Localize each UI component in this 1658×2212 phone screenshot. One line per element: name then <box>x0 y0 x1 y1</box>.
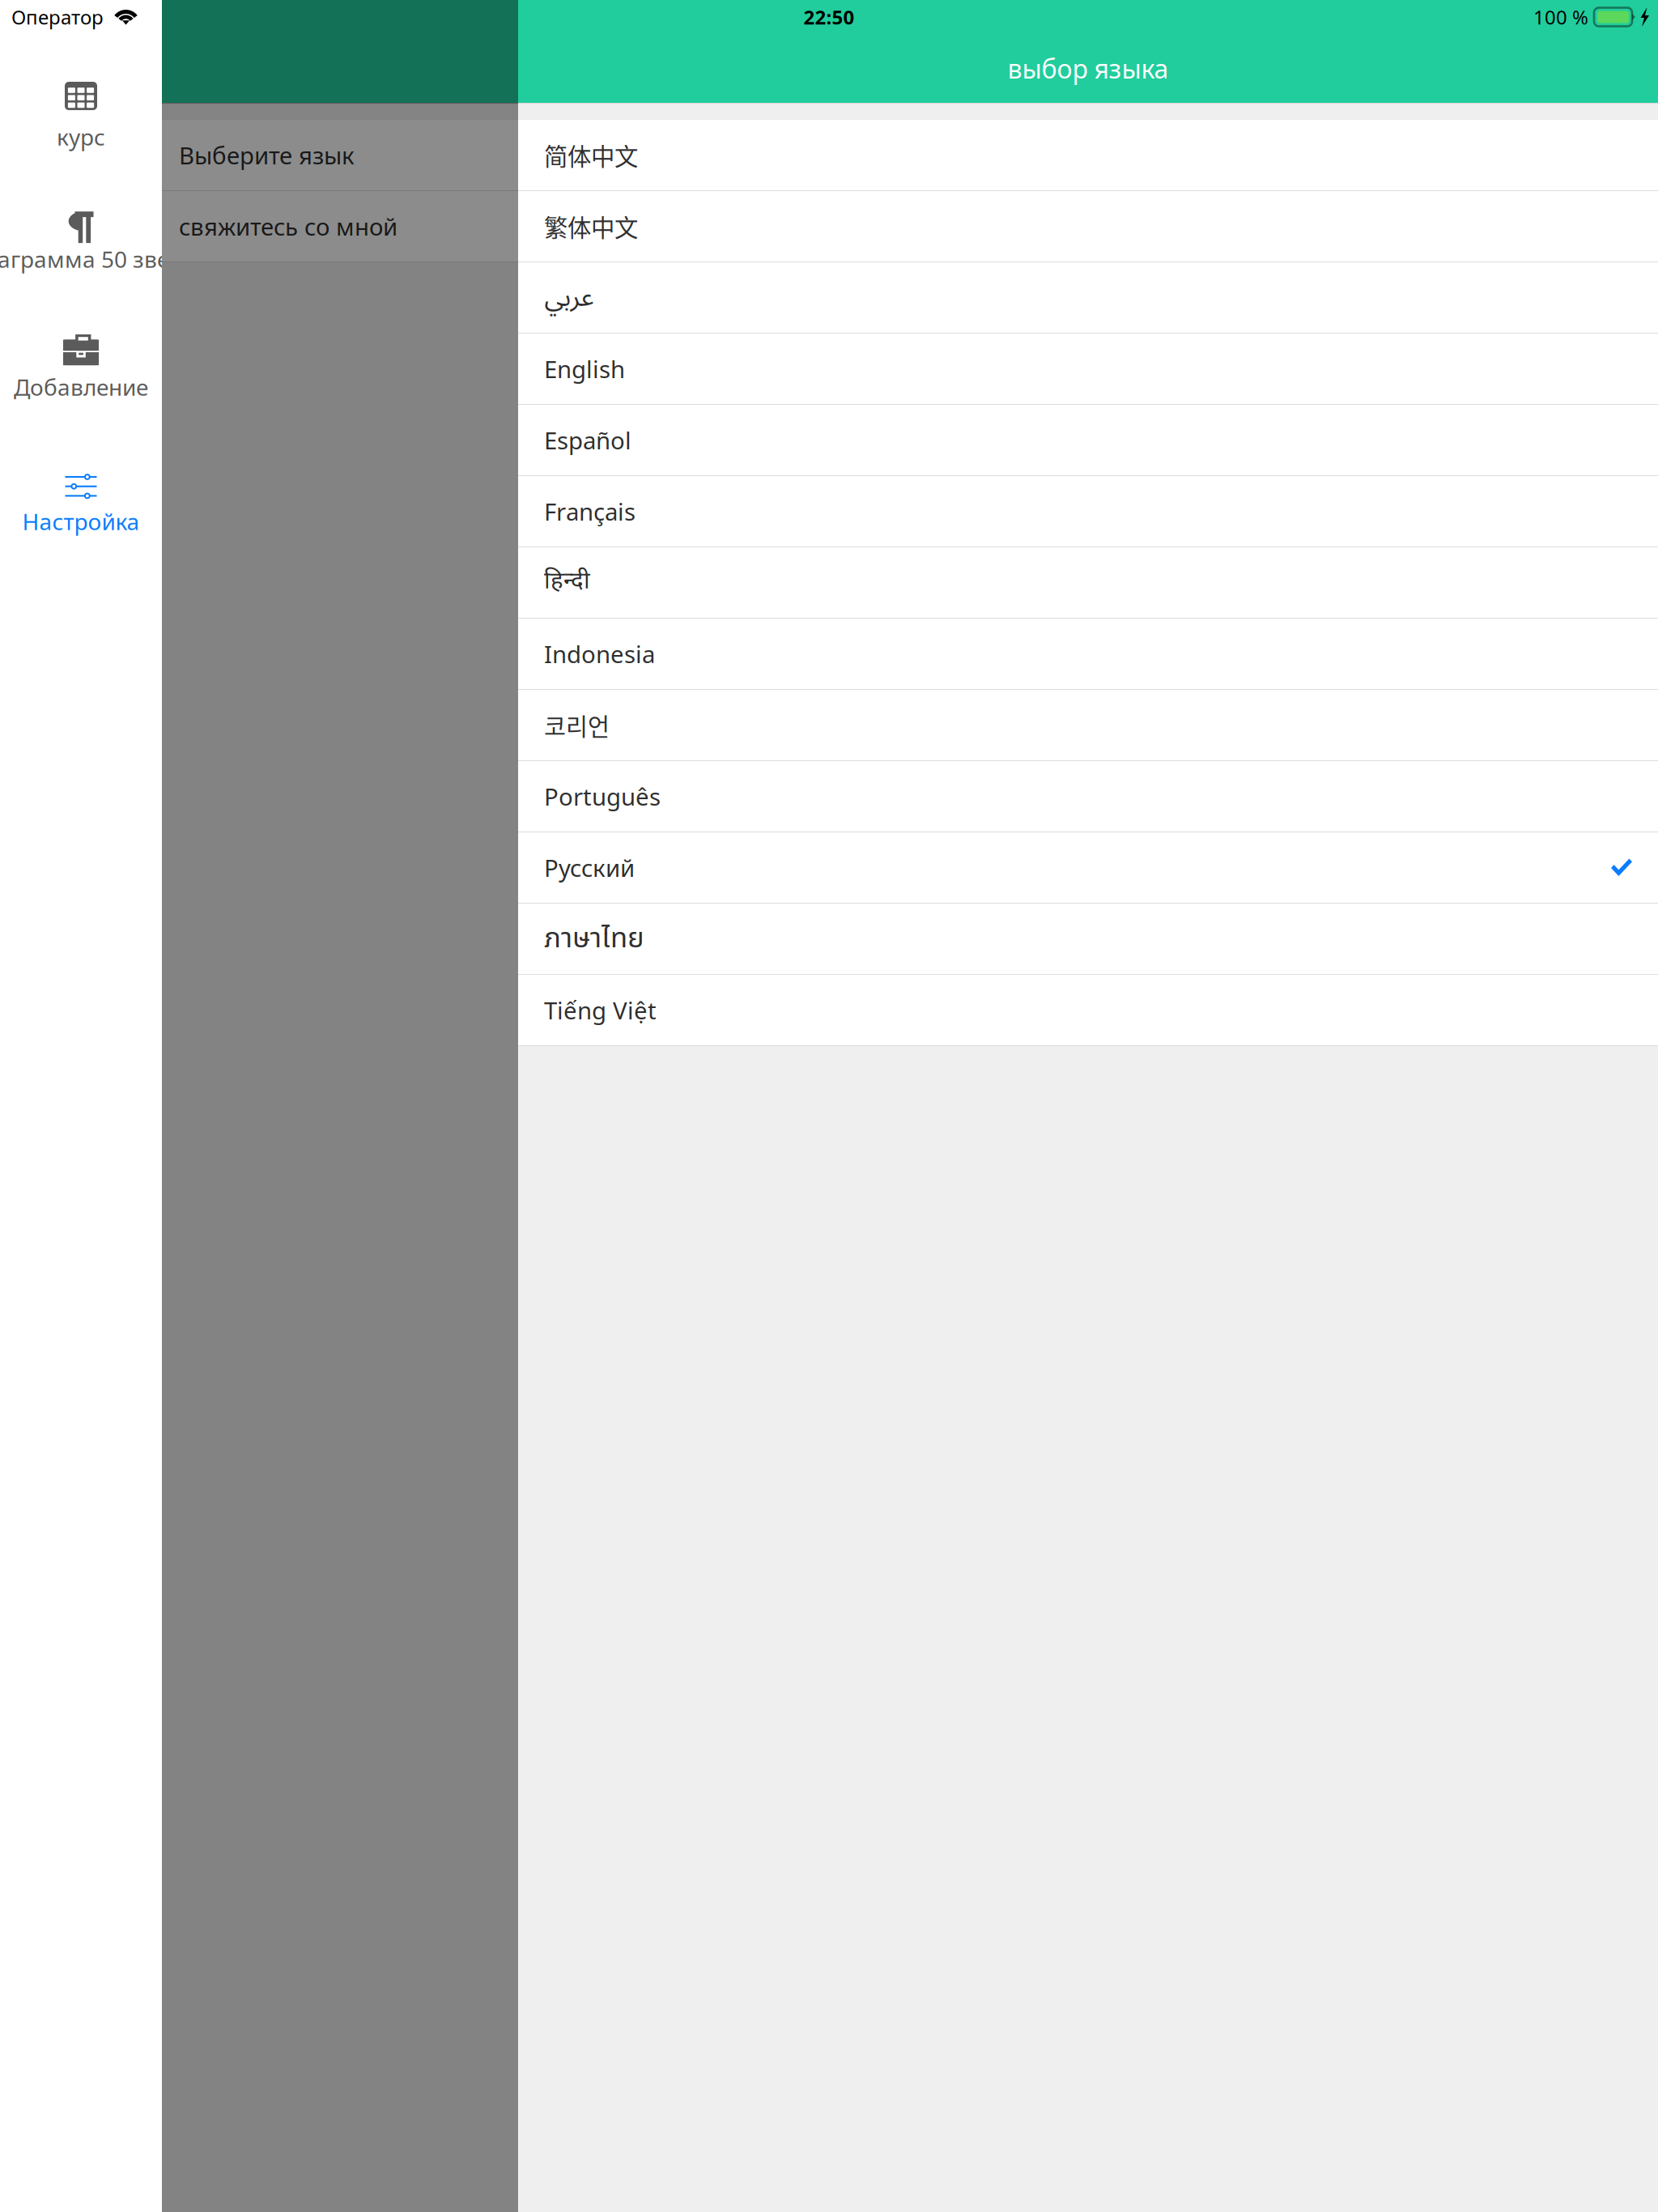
staticText: Добавление <box>14 372 148 402</box>
button[interactable]: Português <box>518 761 1658 832</box>
button[interactable]: Выберите язык <box>162 120 518 191</box>
staticText: English <box>544 353 625 385</box>
staticText: Español <box>544 424 631 456</box>
button[interactable]: 코리언 <box>518 690 1658 761</box>
staticText: Выберите язык <box>179 139 355 171</box>
button[interactable]: Добавление <box>0 334 162 404</box>
staticText: Português <box>544 780 661 812</box>
staticText: हिन्दी <box>544 567 590 598</box>
button[interactable]: 繁体中文 <box>518 191 1658 262</box>
button[interactable]: Настройка <box>0 476 162 538</box>
staticText: 100 % <box>1533 4 1588 30</box>
button[interactable]: 简体中文 <box>518 120 1658 191</box>
staticText: Indonesia <box>544 638 655 670</box>
button[interactable]: عربي <box>518 262 1658 334</box>
staticText: свяжитесь со мной <box>179 210 397 242</box>
button[interactable]: Tiếng Việt <box>518 975 1658 1046</box>
button[interactable]: हिन्दी <box>518 547 1658 619</box>
staticText: Français <box>544 495 636 527</box>
button[interactable]: English <box>518 334 1658 405</box>
button[interactable]: свяжитесь со мной <box>162 191 518 262</box>
staticText: курс <box>57 121 105 152</box>
staticText: Оператор <box>11 4 104 30</box>
staticText: عربي <box>544 270 593 325</box>
staticText: Диаграмма 50 звезд <box>0 244 194 274</box>
staticText: 코리언 <box>544 708 610 742</box>
staticText: выбор языка <box>1008 51 1169 86</box>
button[interactable]: Indonesia <box>518 619 1658 690</box>
staticText: Tiếng Việt <box>544 994 657 1026</box>
staticText: 繁体中文 <box>544 209 638 244</box>
button[interactable]: ภาษาไทย <box>518 904 1658 975</box>
staticText: 22:50 <box>803 4 855 30</box>
staticText: Русский <box>544 851 635 884</box>
button[interactable]: курс <box>0 82 162 154</box>
button[interactable]: Español <box>518 405 1658 476</box>
button[interactable]: Русский <box>518 832 1658 904</box>
button[interactable]: Français <box>518 476 1658 547</box>
staticText: 简体中文 <box>544 138 638 172</box>
staticText: ภาษาไทย <box>544 918 644 960</box>
staticText: Настройка <box>22 506 140 537</box>
button[interactable]: Диаграмма 50 звезд <box>0 211 162 276</box>
